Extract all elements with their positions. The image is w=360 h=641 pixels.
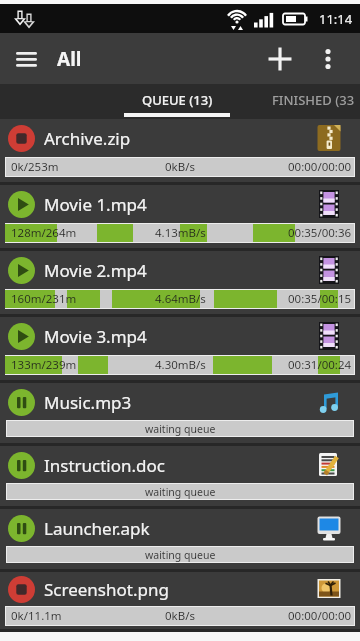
staticText: QUEUE (13) — [142, 91, 213, 109]
button[interactable]: Launcher.apk — [0, 509, 360, 572]
staticText: 00:35/00:15 — [288, 291, 352, 307]
staticText: 0k/11.1m — [11, 608, 62, 624]
button[interactable]: Screenshot.png — [0, 572, 360, 632]
staticText: Movie 3.mp4 — [44, 325, 147, 348]
staticText: 00:31/00:24 — [288, 357, 352, 373]
staticText: Launcher.apk — [44, 517, 150, 540]
staticText: Music.mp3 — [44, 391, 132, 414]
button[interactable]: Archive.zip — [0, 119, 360, 185]
staticText: 160m/231m — [11, 291, 77, 307]
button[interactable]: Movie 3.mp4 — [0, 317, 360, 383]
staticText: All — [57, 46, 82, 72]
staticText: 00:00/00:00 — [288, 159, 352, 175]
staticText: 4.13mB/s — [155, 225, 206, 241]
staticText: waiting queue — [145, 422, 216, 436]
staticText: FINISHED (33 — [272, 91, 355, 109]
button[interactable]: QUEUE (13) — [122, 84, 232, 119]
staticText: Instruction.doc — [44, 454, 166, 477]
button[interactable] — [316, 47, 340, 71]
button[interactable]: Movie 2.mp4 — [0, 251, 360, 317]
staticText: 00:35/00:36 — [288, 225, 352, 241]
staticText: 133m/239m — [11, 357, 77, 373]
staticText: Movie 1.mp4 — [44, 193, 147, 216]
staticText: 0kB/s — [165, 159, 195, 175]
staticText: waiting queue — [145, 485, 216, 499]
staticText: 4.30mB/s — [155, 357, 206, 373]
button[interactable]: Instruction.doc — [0, 446, 360, 509]
button[interactable]: FINISHED (33 — [268, 84, 360, 119]
button[interactable] — [14, 44, 44, 74]
button[interactable]: Movie 1.mp4 — [0, 185, 360, 251]
staticText: waiting queue — [145, 548, 216, 562]
staticText: Screenshot.png — [44, 578, 169, 601]
staticText: 128m/264m — [11, 225, 77, 241]
button[interactable] — [265, 44, 295, 74]
staticText: 4.64mB/s — [155, 291, 206, 307]
staticText: 0kB/s — [165, 608, 195, 624]
staticText: 00:00/00:00 — [288, 608, 352, 624]
staticText: 11:14 — [319, 10, 353, 28]
staticText: 0k/253m — [11, 159, 59, 175]
button[interactable]: Music.mp3 — [0, 383, 360, 446]
staticText: Movie 2.mp4 — [44, 259, 147, 282]
staticText: Archive.zip — [44, 127, 131, 150]
